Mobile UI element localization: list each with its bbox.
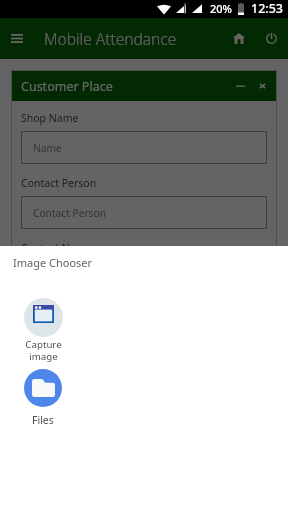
staticText: Capture image — [25, 338, 62, 362]
button[interactable]: Close — [258, 76, 266, 96]
staticText: Files — [32, 413, 54, 427]
staticText: Mobile Attendance — [44, 28, 177, 49]
staticText: 20% — [210, 1, 232, 16]
button[interactable]: Log out — [255, 18, 287, 59]
staticText: 20% — [210, 1, 232, 16]
staticText: Customer Place — [21, 78, 113, 95]
staticText: Contact No — [21, 241, 77, 255]
staticText: Name — [33, 141, 62, 155]
staticText: Image Chooser — [13, 255, 93, 270]
button[interactable]: Capture image — [0, 298, 86, 362]
button[interactable]: Minimise — [236, 76, 245, 96]
button[interactable]: Files — [0, 369, 86, 427]
staticText: 12:53 — [251, 0, 284, 17]
button[interactable]: Open navigation menu — [0, 18, 34, 59]
button[interactable]: Home — [223, 18, 255, 59]
staticText: Contact Person — [33, 206, 106, 220]
staticText: 12:53 — [251, 0, 284, 17]
staticText: Contact Person — [21, 176, 97, 190]
staticText: Shop Name — [21, 111, 79, 125]
